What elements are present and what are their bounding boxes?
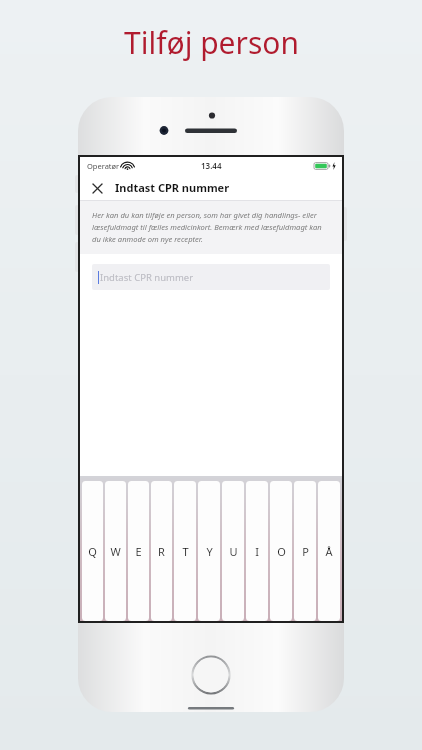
staticText: Her kan du kan tilføje en person, som ha… — [92, 210, 330, 245]
button[interactable]: Y — [198, 481, 220, 621]
button[interactable]: P — [294, 481, 316, 621]
staticText: I — [255, 544, 259, 559]
button[interactable]: Q — [82, 481, 103, 621]
staticText: Y — [206, 544, 213, 559]
button[interactable]: O — [270, 481, 292, 621]
staticText: U — [229, 544, 238, 559]
button[interactable]: E — [128, 481, 149, 621]
button[interactable]: U — [222, 481, 244, 621]
button[interactable]: T — [174, 481, 196, 621]
button[interactable]: W — [105, 481, 126, 621]
staticText: Q — [88, 544, 97, 559]
button[interactable]: I — [246, 481, 268, 621]
staticText: T — [182, 544, 189, 559]
staticText: 13.44 — [201, 160, 222, 171]
staticText: E — [135, 544, 142, 559]
button[interactable]: R — [151, 481, 172, 621]
staticText: Tilføj person — [124, 22, 299, 63]
button[interactable]: Luk — [86, 177, 108, 199]
staticText: O — [277, 544, 286, 559]
staticText: Indtast CPR nummer — [115, 180, 230, 195]
staticText: Indtast CPR nummer — [100, 271, 194, 284]
staticText: P — [302, 544, 309, 559]
staticText: W — [110, 544, 121, 559]
staticText: Operatør — [87, 161, 120, 171]
staticText: R — [158, 544, 165, 559]
button[interactable]: Indtast CPR nummer — [92, 264, 330, 290]
staticText: Å — [325, 544, 333, 559]
button[interactable]: Å — [318, 481, 340, 621]
